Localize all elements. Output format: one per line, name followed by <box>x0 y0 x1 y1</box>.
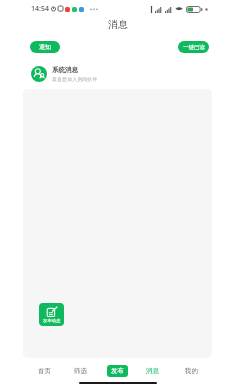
button[interactable]: 发布 <box>107 365 128 377</box>
button[interactable]: 首页 <box>35 364 53 378</box>
button[interactable]: 发布动态 <box>39 303 64 326</box>
staticText: 14:54 <box>31 4 49 14</box>
staticText: 系统消息 <box>52 66 78 74</box>
staticText: 我的 <box>185 367 198 375</box>
staticText: 筛选 <box>74 367 87 375</box>
button[interactable]: 系统消息 <box>23 61 212 87</box>
button[interactable]: 我的 <box>182 364 200 378</box>
staticText: 通知 <box>39 43 51 51</box>
staticText: 消息 <box>146 367 159 375</box>
button[interactable]: 筛选 <box>71 364 89 378</box>
staticText: 发布 <box>111 367 124 375</box>
staticText: 消息 <box>108 18 128 30</box>
staticText: 首页 <box>38 367 51 375</box>
staticText: 一键已读 <box>183 44 205 51</box>
staticText: 发布动态 <box>43 318 61 323</box>
button[interactable]: 通知 <box>30 41 60 53</box>
staticText: 恭喜您加入房间伙伴 <box>52 76 98 82</box>
button[interactable]: 一键已读 <box>178 41 209 53</box>
button[interactable]: 消息 <box>143 364 161 378</box>
